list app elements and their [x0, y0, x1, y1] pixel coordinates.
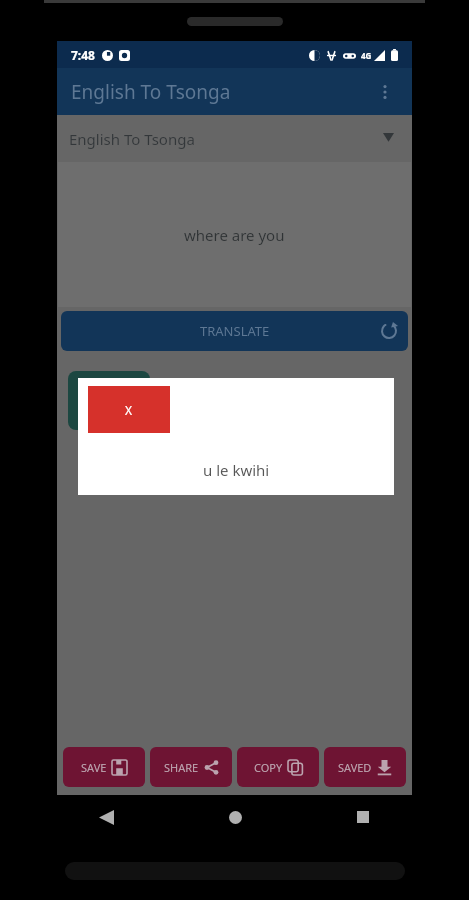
button[interactable]: Recent apps: [341, 795, 385, 839]
button[interactable]: X: [88, 386, 170, 433]
staticText: 7:48: [71, 47, 95, 63]
staticText: English To Tsonga: [69, 129, 195, 149]
button[interactable]: SAVE: [63, 747, 145, 787]
button[interactable]: LISTEN: [68, 371, 150, 430]
staticText: X: [125, 402, 133, 418]
staticText: SAVED: [338, 760, 372, 775]
button[interactable]: where are you: [58, 162, 411, 307]
button[interactable]: SHARE: [150, 747, 232, 787]
staticText: LISTEN: [88, 403, 131, 421]
staticText: English To Tsonga: [71, 79, 231, 105]
staticText: SHARE: [164, 760, 199, 775]
button[interactable]: Back: [84, 795, 128, 839]
button[interactable]: English To Tsonga: [57, 115, 412, 162]
staticText: where are you: [184, 225, 285, 245]
button[interactable]: TRANSLATE: [61, 311, 408, 351]
staticText: TRANSLATE: [200, 322, 270, 340]
button[interactable]: SAVED: [324, 747, 406, 787]
staticText: u le kwihi: [203, 460, 270, 480]
staticText: SAVE: [81, 760, 107, 775]
staticText: 4G: [361, 50, 372, 61]
staticText: COPY: [254, 760, 283, 775]
button[interactable]: Home: [213, 795, 257, 839]
button[interactable]: COPY: [237, 747, 319, 787]
button[interactable]: More options: [368, 75, 402, 109]
